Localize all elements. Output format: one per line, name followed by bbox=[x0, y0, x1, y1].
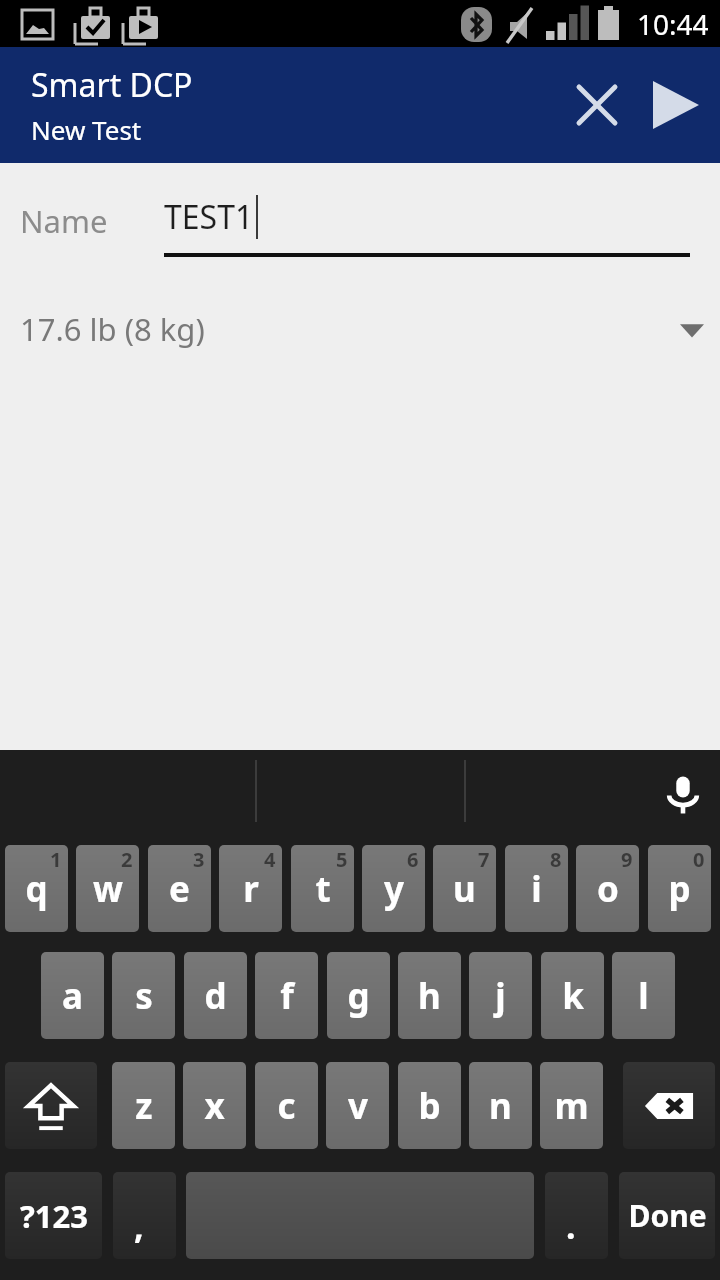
staticText: x bbox=[204, 1082, 225, 1130]
button[interactable]: Run test bbox=[636, 66, 714, 144]
staticText: b bbox=[418, 1082, 441, 1130]
staticText: v bbox=[348, 1082, 368, 1130]
staticText: TEST1 bbox=[164, 195, 254, 239]
button[interactable]: 17.6 lb (8 kg) bbox=[0, 299, 720, 359]
staticText: 5 bbox=[336, 846, 348, 873]
staticText: 8 bbox=[550, 846, 562, 873]
button[interactable]: s bbox=[112, 952, 175, 1039]
staticText: s bbox=[135, 972, 153, 1020]
button[interactable]: c bbox=[255, 1062, 318, 1149]
button[interactable]: b bbox=[398, 1062, 461, 1149]
staticText: 4 bbox=[264, 846, 276, 873]
button[interactable]: ?123 bbox=[5, 1172, 102, 1259]
staticText: 0 bbox=[693, 846, 705, 873]
button[interactable]: Backspace bbox=[623, 1062, 715, 1149]
staticText: 7 bbox=[478, 846, 490, 873]
button[interactable]: m bbox=[540, 1062, 603, 1149]
button[interactable]: u bbox=[433, 845, 496, 932]
staticText: r bbox=[243, 865, 259, 913]
staticText: New Test bbox=[31, 112, 142, 147]
button[interactable]: . bbox=[545, 1172, 608, 1259]
staticText: Smart DCP bbox=[31, 63, 193, 107]
staticText: u bbox=[453, 865, 476, 913]
button[interactable]: d bbox=[184, 952, 247, 1039]
staticText: Name bbox=[20, 200, 108, 242]
button[interactable]: v bbox=[326, 1062, 389, 1149]
button[interactable]: Cancel bbox=[558, 66, 636, 144]
button[interactable]: n bbox=[469, 1062, 532, 1149]
staticText: , bbox=[134, 1203, 144, 1249]
staticText: 2 bbox=[121, 846, 133, 873]
button[interactable]: k bbox=[541, 952, 604, 1039]
staticText: ?123 bbox=[20, 1195, 88, 1237]
staticText: t bbox=[315, 865, 331, 913]
staticText: o bbox=[597, 865, 619, 913]
button[interactable]: Space bbox=[186, 1172, 534, 1259]
staticText: 10:44 bbox=[637, 5, 709, 43]
button[interactable]: o bbox=[576, 845, 639, 932]
staticText: n bbox=[489, 1082, 512, 1130]
staticText: 3 bbox=[193, 846, 205, 873]
staticText: j bbox=[495, 972, 506, 1020]
staticText: c bbox=[277, 1082, 296, 1130]
staticText: . bbox=[566, 1203, 576, 1249]
staticText: k bbox=[562, 972, 584, 1020]
staticText: i bbox=[531, 865, 542, 913]
button[interactable]: f bbox=[255, 952, 318, 1039]
button[interactable]: w bbox=[76, 845, 139, 932]
staticText: q bbox=[25, 865, 48, 913]
button[interactable]: z bbox=[112, 1062, 175, 1149]
staticText: m bbox=[554, 1082, 589, 1130]
staticText: 9 bbox=[621, 846, 633, 873]
button[interactable]: TEST1 bbox=[164, 177, 690, 257]
button[interactable]: e bbox=[148, 845, 211, 932]
staticText: g bbox=[347, 972, 370, 1020]
staticText: f bbox=[280, 972, 294, 1020]
staticText: 6 bbox=[407, 846, 419, 873]
button[interactable]: i bbox=[505, 845, 568, 932]
button[interactable]: l bbox=[612, 952, 675, 1039]
staticText: d bbox=[204, 972, 227, 1020]
staticText: p bbox=[668, 865, 691, 913]
button[interactable]: Shift bbox=[5, 1062, 97, 1149]
button[interactable]: a bbox=[41, 952, 104, 1039]
button[interactable]: h bbox=[398, 952, 461, 1039]
staticText: e bbox=[169, 865, 190, 913]
button[interactable]: j bbox=[469, 952, 532, 1039]
staticText: w bbox=[93, 865, 123, 913]
staticText: h bbox=[418, 972, 441, 1020]
staticText: a bbox=[62, 972, 83, 1020]
button[interactable]: y bbox=[362, 845, 425, 932]
staticText: 1 bbox=[50, 846, 62, 873]
button[interactable]: t bbox=[291, 845, 354, 932]
staticText: l bbox=[638, 972, 649, 1020]
staticText: z bbox=[135, 1082, 153, 1130]
button[interactable]: r bbox=[219, 845, 282, 932]
button[interactable]: g bbox=[327, 952, 390, 1039]
button[interactable]: Done bbox=[619, 1172, 715, 1259]
button[interactable]: x bbox=[183, 1062, 246, 1149]
button[interactable]: q bbox=[5, 845, 68, 932]
button[interactable]: , bbox=[113, 1172, 176, 1259]
staticText: y bbox=[384, 865, 404, 913]
staticText: Done bbox=[628, 1195, 707, 1236]
button[interactable]: p bbox=[648, 845, 711, 932]
button[interactable]: Voice input bbox=[652, 764, 714, 826]
staticText: 17.6 lb (8 kg) bbox=[20, 308, 678, 350]
